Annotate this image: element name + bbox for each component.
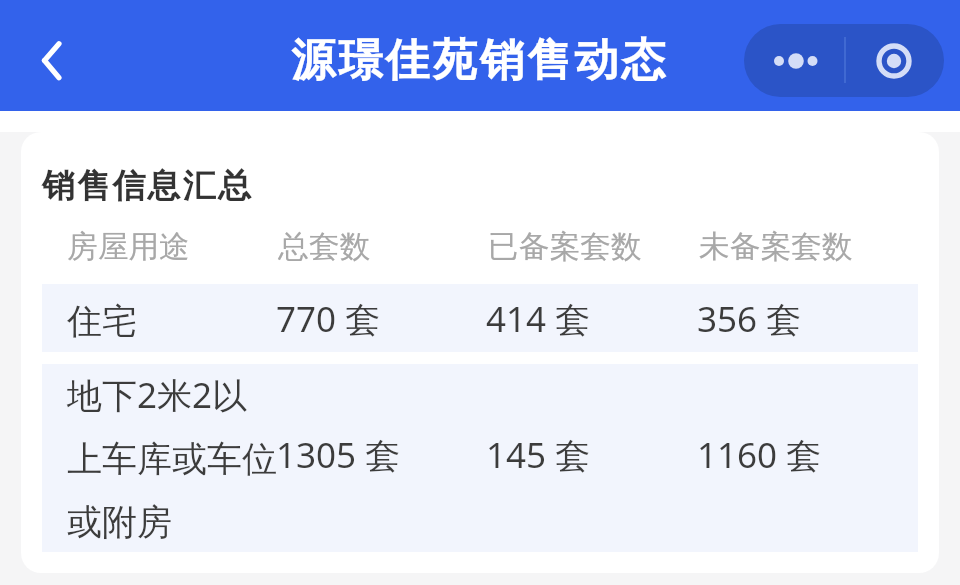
staticText: 总套数 (278, 227, 371, 266)
staticText: 住宅 (67, 299, 279, 343)
staticText: 145 套 (486, 431, 698, 479)
staticText: 房屋用途 (67, 227, 190, 266)
button[interactable]: Close mini program (844, 24, 944, 97)
staticText: 770 套 (276, 295, 488, 343)
staticText: 已备案套数 (488, 227, 642, 266)
staticText: 未备案套数 (699, 227, 853, 266)
staticText: 1160 套 (697, 431, 909, 479)
staticText: 1305 套 (276, 431, 488, 479)
staticText: 销售信息汇总 (42, 165, 254, 207)
staticText: 地下2米2以上车库或车位或附房 (67, 371, 279, 544)
staticText: 源璟佳苑销售动态 (291, 33, 669, 88)
staticText: 356 套 (697, 295, 909, 343)
staticText: 414 套 (486, 295, 698, 343)
button[interactable]: More options (744, 24, 844, 97)
button[interactable]: Back (11, 20, 91, 100)
button[interactable]: 地下2米2以上车库或车位或附房 (42, 364, 918, 552)
button[interactable]: 住宅 (42, 284, 918, 352)
